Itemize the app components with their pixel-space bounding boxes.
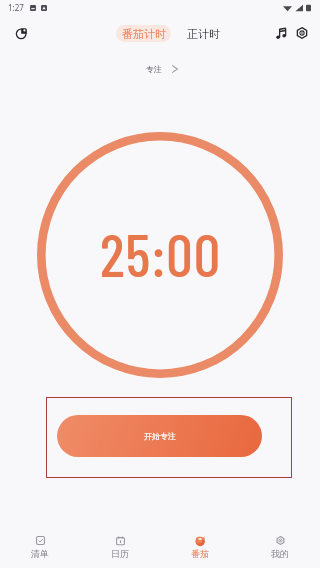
button[interactable]: Statistics	[11, 22, 33, 44]
button[interactable]: 清单	[0, 512, 80, 559]
staticText: 番茄计时	[122, 27, 166, 41]
staticText: 1:27	[8, 2, 24, 13]
staticText: 清单	[31, 548, 49, 559]
button[interactable]: Music	[271, 23, 291, 43]
button[interactable]: 正计时	[185, 25, 222, 42]
staticText: 我的	[271, 548, 289, 559]
staticText: 25:00	[100, 218, 222, 289]
button[interactable]: 番茄	[160, 512, 240, 559]
button[interactable]: 番茄计时	[116, 25, 171, 42]
button[interactable]: Settings	[292, 23, 312, 43]
staticText: 正计时	[187, 27, 220, 41]
staticText: 日历	[111, 548, 129, 559]
button[interactable]: 日历	[80, 512, 160, 559]
staticText: 开始专注	[144, 431, 176, 441]
button[interactable]: 专注	[140, 61, 184, 77]
staticText: 番茄	[191, 548, 209, 559]
staticText: 专注	[146, 64, 162, 74]
button[interactable]: 我的	[240, 512, 320, 559]
button[interactable]: 开始专注	[57, 415, 262, 457]
